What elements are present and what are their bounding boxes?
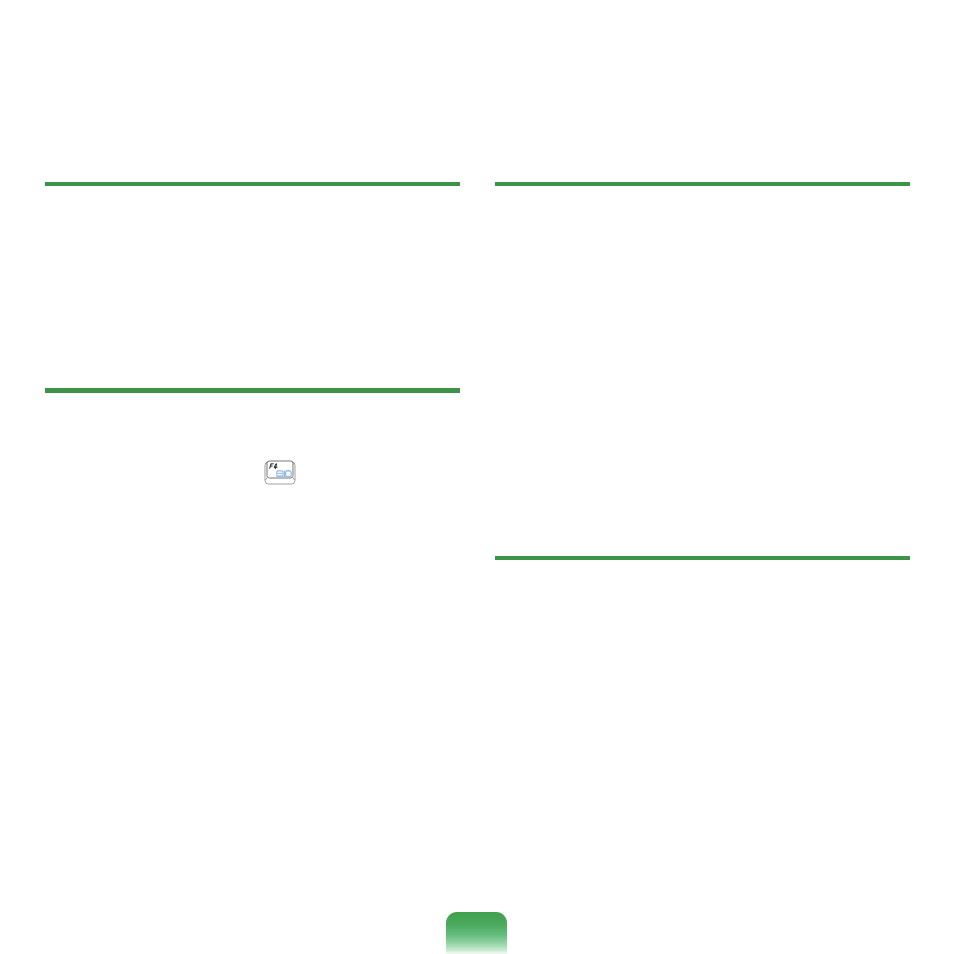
button[interactable] — [446, 912, 507, 954]
button[interactable]: F4 key — [262, 458, 298, 488]
